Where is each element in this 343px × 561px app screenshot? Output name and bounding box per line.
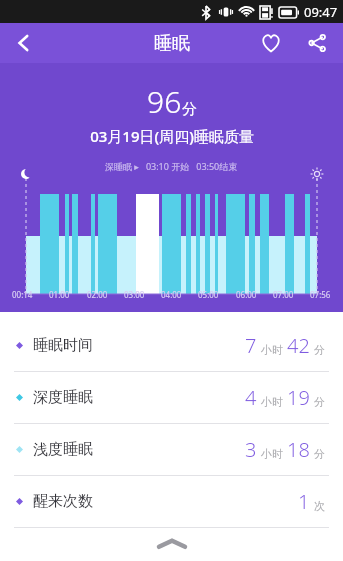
staticText: 小时 bbox=[261, 343, 283, 357]
staticText: 分 bbox=[314, 447, 325, 461]
button[interactable]: Back bbox=[6, 25, 42, 61]
staticText: 03:00 bbox=[124, 289, 145, 300]
staticText: 06:00 bbox=[236, 289, 257, 300]
staticText: 3 bbox=[245, 436, 257, 463]
staticText: 00:14 bbox=[12, 289, 33, 300]
button[interactable]: Favorite bbox=[253, 25, 289, 61]
staticText: 96 bbox=[147, 81, 182, 122]
staticText: 浅度睡眠 bbox=[33, 440, 93, 459]
staticText: 深睡眠 ▸ 03:10 开始 03:50结束 bbox=[105, 160, 238, 172]
button[interactable]: 深度睡眠 bbox=[0, 372, 343, 423]
staticText: 4 bbox=[245, 384, 257, 411]
staticText: 分 bbox=[314, 395, 325, 409]
staticText: 42 bbox=[287, 332, 310, 359]
staticText: 01:00 bbox=[49, 289, 70, 300]
staticText: 小时 bbox=[261, 395, 283, 409]
staticText: 04:00 bbox=[161, 289, 182, 300]
staticText: 7 bbox=[245, 332, 257, 359]
button[interactable]: Share bbox=[299, 25, 335, 61]
staticText: 睡眠 bbox=[154, 32, 190, 55]
staticText: 02:00 bbox=[87, 289, 108, 300]
staticText: 醒来次数 bbox=[33, 492, 93, 511]
staticText: 03月19日(周四)睡眠质量 bbox=[90, 126, 254, 146]
staticText: 深度睡眠 bbox=[33, 388, 93, 407]
staticText: 18 bbox=[287, 436, 310, 463]
staticText: 07:00 bbox=[273, 289, 294, 300]
staticText: 次 bbox=[314, 499, 325, 513]
staticText: 09:47 bbox=[304, 3, 338, 21]
staticText: 睡眠时间 bbox=[33, 336, 93, 355]
staticText: 1 bbox=[298, 488, 310, 515]
staticText: 07:56 bbox=[310, 289, 331, 300]
staticText: 05:00 bbox=[198, 289, 219, 300]
staticText: 19 bbox=[287, 384, 310, 411]
button[interactable]: 浅度睡眠 bbox=[0, 424, 343, 475]
button[interactable]: 睡眠时间 bbox=[0, 320, 343, 371]
staticText: 分 bbox=[314, 343, 325, 357]
button[interactable]: 醒来次数 bbox=[0, 476, 343, 527]
staticText: 分 bbox=[182, 100, 197, 119]
staticText: 小时 bbox=[261, 447, 283, 461]
